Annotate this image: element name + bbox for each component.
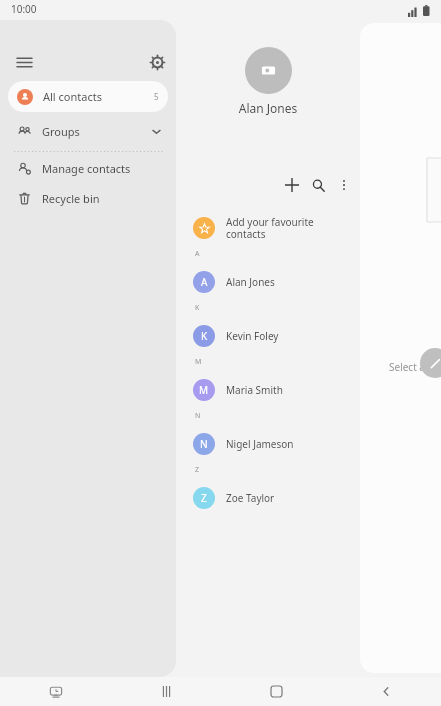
staticText: Alan Jones xyxy=(226,275,275,289)
button[interactable]: A xyxy=(176,260,360,303)
button[interactable]: M xyxy=(176,368,360,411)
staticText: Maria Smith xyxy=(226,383,283,397)
button[interactable]: Profile picture xyxy=(245,47,292,94)
staticText: All contacts xyxy=(43,89,102,104)
button[interactable]: N xyxy=(176,422,360,465)
button[interactable]: K xyxy=(176,314,360,357)
button[interactable]: Z xyxy=(176,476,360,519)
staticText: A xyxy=(201,275,208,289)
button[interactable]: Recycle bin xyxy=(0,183,176,213)
staticText: 5 xyxy=(154,91,159,102)
staticText: Manage contacts xyxy=(42,161,131,176)
staticText: M xyxy=(199,383,209,397)
button[interactable]: Add your favourite contacts xyxy=(176,208,360,248)
staticText: Z xyxy=(195,465,200,475)
staticText: 10:00 xyxy=(11,2,37,16)
button[interactable]: Back xyxy=(331,677,441,706)
button[interactable]: Settings xyxy=(141,46,173,78)
button[interactable]: All contacts xyxy=(8,81,168,112)
button[interactable]: Manage contacts xyxy=(0,153,176,183)
staticText: Add your favourite contacts xyxy=(226,215,314,241)
staticText: K xyxy=(201,329,208,343)
staticText: Select a co xyxy=(389,360,439,374)
button[interactable]: Groups xyxy=(0,116,176,146)
staticText: Kevin Foley xyxy=(226,329,279,343)
staticText: M xyxy=(195,357,202,367)
staticText: Recycle bin xyxy=(42,191,100,206)
staticText: Alan Jones xyxy=(176,100,360,116)
button[interactable]: Home xyxy=(221,677,331,706)
staticText: Z xyxy=(201,491,207,505)
staticText: N xyxy=(200,437,208,451)
staticText: K xyxy=(195,303,200,313)
staticText: Groups xyxy=(42,124,80,139)
staticText: Zoe Taylor xyxy=(226,491,275,505)
button[interactable]: More options xyxy=(332,173,356,197)
staticText: A xyxy=(195,249,200,259)
staticText: N xyxy=(195,411,201,421)
button[interactable]: Edit contact xyxy=(420,348,441,378)
button[interactable]: Open navigation menu xyxy=(8,46,40,78)
button[interactable]: Search xyxy=(306,173,330,197)
button[interactable]: Recents xyxy=(111,677,221,706)
button[interactable]: Add contact xyxy=(280,173,304,197)
staticText: Nigel Jameson xyxy=(226,437,294,451)
button[interactable]: Screenshot xyxy=(0,677,111,706)
